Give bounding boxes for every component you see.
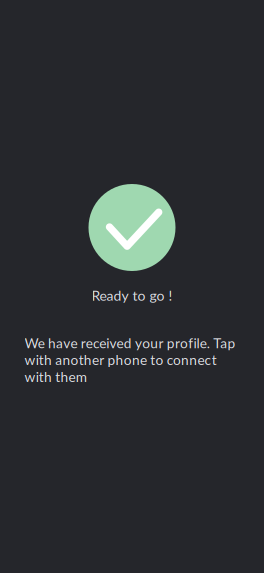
staticText: Ready to go ! bbox=[91, 287, 172, 304]
staticText: We have received your profile. Tap with … bbox=[24, 335, 235, 385]
